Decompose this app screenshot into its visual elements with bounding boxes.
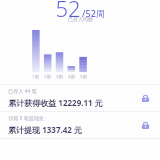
button[interactable]: 查看累计收益明细 <box>138 91 152 105</box>
staticText: 4期 <box>68 74 75 79</box>
staticText: 累计获得收益 12229.11 元 <box>8 97 103 108</box>
staticText: 1期 <box>32 74 39 79</box>
staticText: 累计提现 1337.42 元 <box>8 124 82 135</box>
staticText: /52周 <box>82 7 105 19</box>
staticText: 2期 <box>44 74 51 79</box>
button[interactable]: 查看累计提现明细 <box>138 118 152 132</box>
button[interactable]: 仅得 5 笔提现金 <box>0 112 160 138</box>
staticText: 已存入 44 笔 <box>8 88 37 95</box>
button[interactable]: 已存入 44 笔 <box>0 85 160 111</box>
staticText: 52 <box>55 0 81 21</box>
staticText: 5期 <box>80 74 87 79</box>
staticText: 3期 <box>56 74 63 79</box>
staticText: 已存入周数 <box>68 16 93 22</box>
staticText: 仅得 5 笔提现金 <box>8 115 44 122</box>
